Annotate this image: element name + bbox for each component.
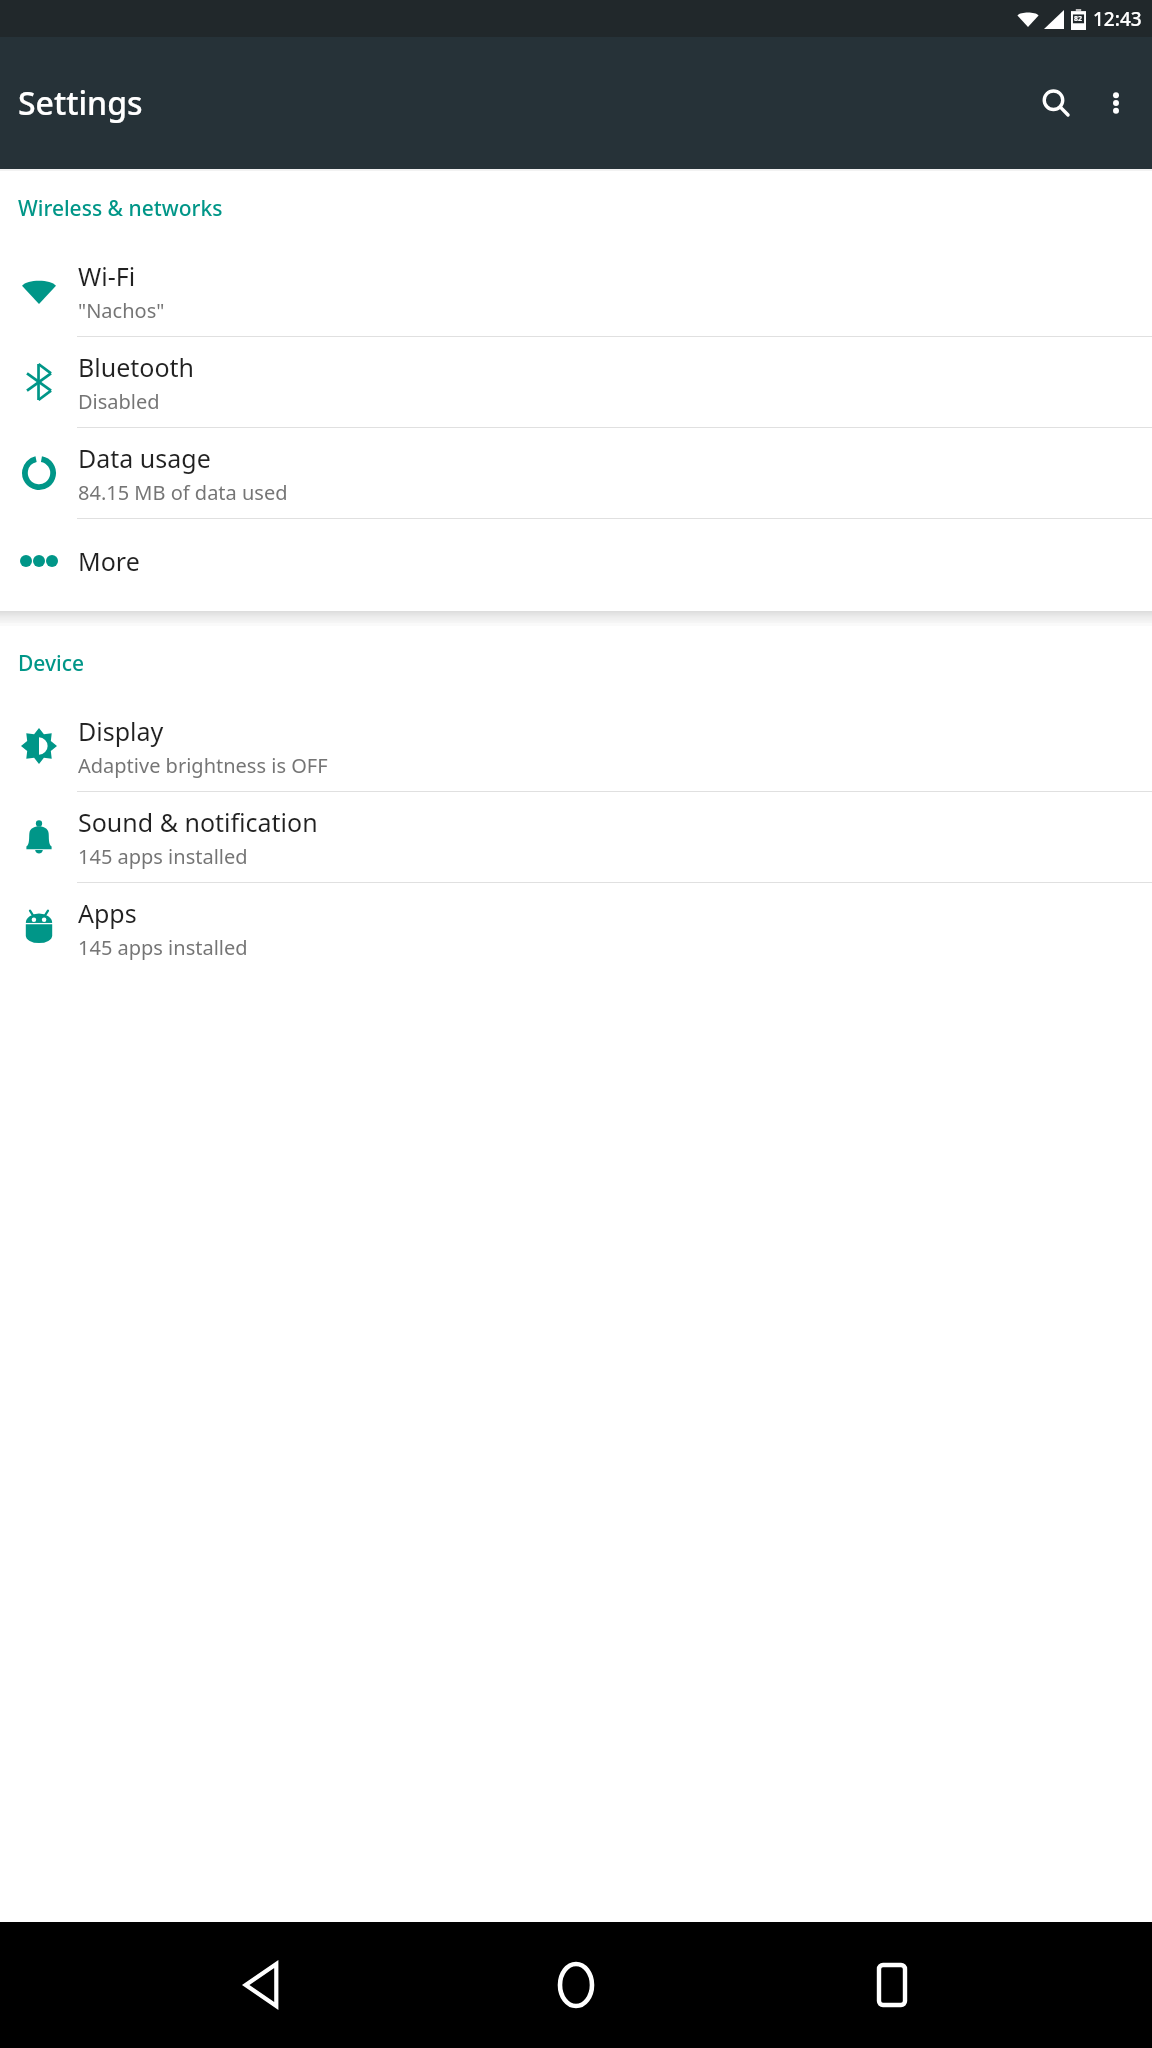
button[interactable]: Data usage	[0, 428, 1152, 519]
staticText: More	[78, 544, 140, 578]
staticText: "Nachos"	[78, 297, 165, 324]
staticText: Apps	[78, 896, 137, 930]
staticText: 12:43	[1093, 6, 1142, 32]
staticText: Data usage	[78, 441, 211, 475]
button[interactable]: Back	[206, 1930, 316, 2040]
button[interactable]: Home	[521, 1930, 631, 2040]
button[interactable]: Sound & notification	[0, 792, 1152, 883]
button[interactable]: Search	[1026, 73, 1086, 133]
button[interactable]: Apps	[0, 883, 1152, 973]
staticText: 145 apps installed	[78, 934, 248, 961]
staticText: 82	[1074, 14, 1083, 24]
staticText: 145 apps installed	[78, 843, 248, 870]
staticText: Settings	[18, 81, 143, 125]
button[interactable]: Wi-Fi	[0, 246, 1152, 337]
button[interactable]: Recent apps	[837, 1930, 947, 2040]
button[interactable]: Bluetooth	[0, 337, 1152, 428]
staticText: Display	[78, 714, 164, 748]
staticText: Sound & notification	[78, 805, 318, 839]
staticText: Bluetooth	[78, 350, 195, 384]
staticText: Wireless & networks	[18, 194, 223, 223]
button[interactable]: More	[0, 519, 1152, 603]
staticText: Disabled	[78, 388, 160, 415]
button[interactable]: Display	[0, 701, 1152, 792]
staticText: Adaptive brightness is OFF	[78, 752, 328, 779]
staticText: 84.15 MB of data used	[78, 479, 288, 506]
button[interactable]: More options	[1086, 73, 1146, 133]
staticText: Device	[18, 649, 85, 678]
staticText: Wi-Fi	[78, 259, 136, 293]
